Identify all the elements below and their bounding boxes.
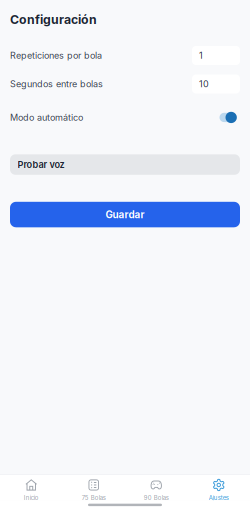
staticText: Repeticiones por bola bbox=[10, 50, 102, 61]
button[interactable]: Ajustes bbox=[187, 475, 250, 500]
button[interactable]: 75 Bolas bbox=[62, 475, 125, 500]
button[interactable]: Inicio bbox=[0, 475, 62, 500]
staticText: 75 Bolas bbox=[82, 494, 106, 501]
staticText: Configuración bbox=[10, 12, 97, 27]
button[interactable]: Guardar bbox=[10, 202, 240, 227]
staticText: Guardar bbox=[105, 209, 144, 220]
button[interactable]: Probar voz bbox=[10, 154, 240, 175]
button[interactable]: Modo automático bbox=[219, 112, 237, 123]
staticText: Modo automático bbox=[10, 112, 83, 123]
staticText: Ajustes bbox=[209, 494, 229, 501]
button[interactable]: 90 Bolas bbox=[125, 475, 187, 500]
staticText: 1 bbox=[199, 50, 203, 61]
staticText: 90 Bolas bbox=[144, 494, 169, 501]
staticText: 10 bbox=[199, 78, 209, 89]
staticText: Segundos entre bolas bbox=[10, 78, 103, 89]
staticText: Inicio bbox=[24, 494, 39, 501]
staticText: Probar voz bbox=[17, 159, 64, 170]
